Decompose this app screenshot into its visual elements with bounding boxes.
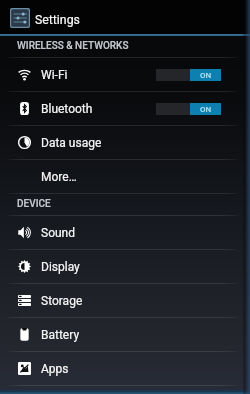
staticText: WIRELESS & NETWORKS <box>17 40 129 52</box>
staticText: Storage <box>41 294 83 308</box>
button[interactable]: Battery <box>0 318 250 351</box>
staticText: Battery <box>41 328 80 342</box>
staticText: Sound <box>41 226 75 240</box>
button[interactable]: Data usage <box>0 126 250 159</box>
button[interactable]: Sound <box>0 216 250 249</box>
staticText: More… <box>41 170 77 184</box>
staticText: ON <box>200 71 212 80</box>
button[interactable]: Toggle <box>156 103 221 115</box>
button[interactable]: Toggle <box>156 69 221 81</box>
button[interactable]: Bluetooth <box>0 92 250 125</box>
button[interactable]: Display <box>0 250 250 283</box>
button[interactable]: Settings <box>0 0 250 34</box>
staticText: ON <box>200 105 212 114</box>
button[interactable]: Wi-Fi <box>0 58 250 91</box>
button[interactable]: Apps <box>0 352 250 385</box>
staticText: Bluetooth <box>41 102 93 116</box>
staticText: Display <box>41 260 80 274</box>
staticText: Data usage <box>41 136 102 150</box>
staticText: Wi-Fi <box>41 68 68 82</box>
button[interactable]: More… <box>0 160 250 193</box>
staticText: Apps <box>41 362 69 376</box>
staticText: Settings <box>35 13 80 27</box>
staticText: DEVICE <box>17 198 51 210</box>
button[interactable]: Storage <box>0 284 250 317</box>
